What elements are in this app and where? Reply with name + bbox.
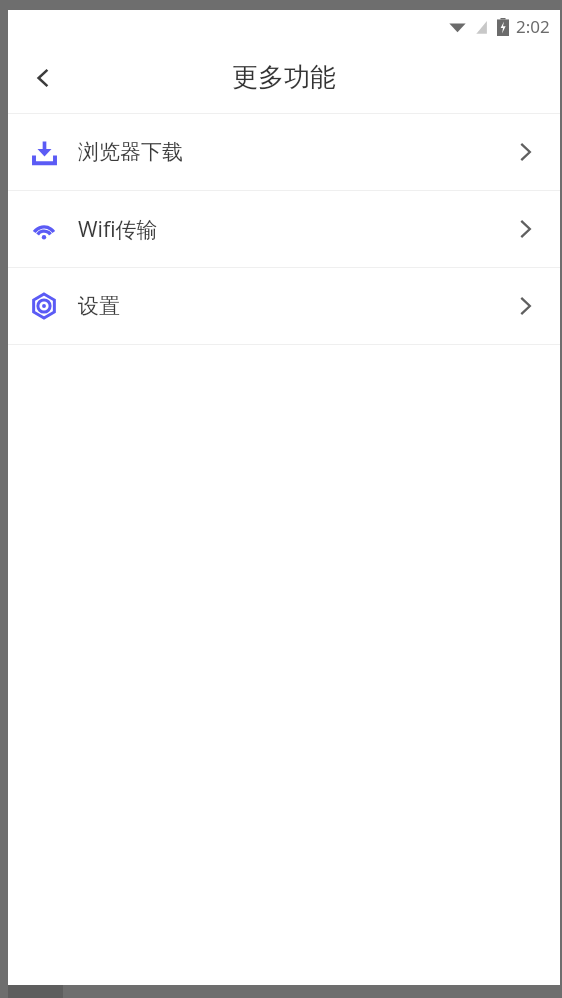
button[interactable]: 浏览器下载 (8, 114, 560, 190)
staticText: 更多功能 (232, 61, 336, 94)
staticText: Wifi传输 (78, 215, 158, 244)
button[interactable]: 设置 (8, 268, 560, 344)
staticText: 设置 (78, 293, 120, 319)
button[interactable]: Back (16, 51, 70, 105)
staticText: 2:02 (516, 15, 550, 38)
button[interactable]: Wifi传输 (8, 191, 560, 267)
staticText: 浏览器下载 (78, 139, 183, 165)
